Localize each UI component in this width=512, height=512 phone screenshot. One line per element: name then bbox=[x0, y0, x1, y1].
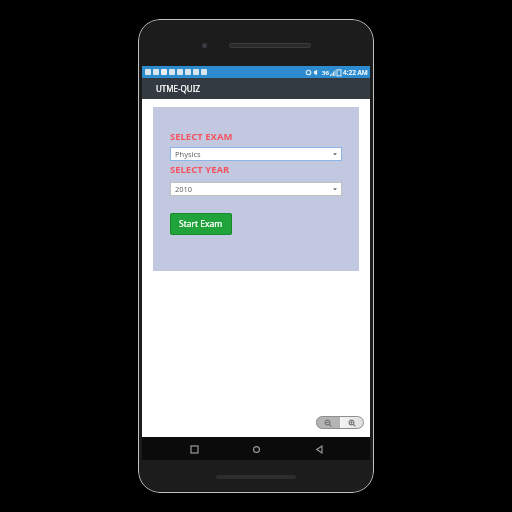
staticText: 36 bbox=[322, 69, 329, 77]
button[interactable]: Start Exam bbox=[170, 213, 232, 235]
button[interactable]: Zoom out bbox=[316, 416, 340, 429]
staticText: Physics bbox=[175, 149, 201, 159]
staticText: Start Exam bbox=[179, 218, 223, 230]
staticText: 4:22 AM bbox=[343, 68, 368, 77]
button[interactable]: Recent apps bbox=[183, 438, 205, 460]
button[interactable]: Home bbox=[245, 438, 267, 460]
button[interactable]: Back bbox=[308, 438, 330, 460]
staticText: SELECT EXAM bbox=[170, 130, 233, 143]
button[interactable]: Physics bbox=[170, 147, 342, 161]
staticText: 2010 bbox=[175, 184, 193, 194]
staticText: SELECT YEAR bbox=[170, 163, 230, 176]
button[interactable]: 2010 bbox=[170, 182, 342, 196]
button[interactable]: Zoom in bbox=[340, 416, 364, 429]
staticText: UTME-QUIZ bbox=[156, 83, 200, 94]
